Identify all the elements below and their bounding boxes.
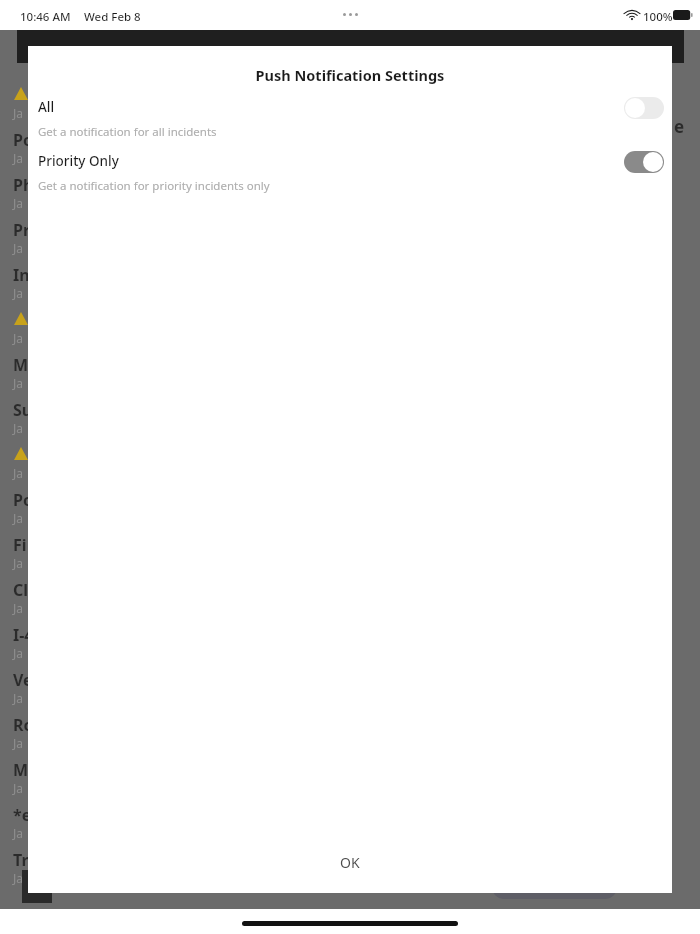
staticText: Ja [13, 510, 24, 526]
button[interactable]: OK [290, 845, 410, 879]
staticText: I-4 [13, 624, 34, 646]
staticText: Ro [13, 714, 34, 736]
staticText: e [674, 115, 685, 138]
staticText: Ve [13, 669, 33, 691]
staticText: M [13, 759, 29, 781]
staticText: Po [13, 129, 33, 151]
staticText: Pr [13, 219, 31, 241]
staticText: M [13, 354, 29, 376]
button[interactable]: Priority Only [28, 148, 672, 196]
staticText: Ja [13, 825, 24, 841]
staticText: Ja [13, 150, 24, 166]
staticText: *e [13, 804, 32, 826]
staticText: Ja [13, 735, 24, 751]
staticText: Get a notification for priority incident… [38, 178, 270, 194]
staticText: Ja [13, 780, 24, 796]
staticText: Ph [13, 174, 34, 196]
staticText: Ja [13, 600, 24, 616]
staticText: Fi [13, 534, 27, 556]
staticText: OK [340, 853, 360, 872]
staticText: Ja [13, 420, 24, 436]
staticText: Ja [13, 555, 24, 571]
staticText: Wed Feb 8 [84, 9, 141, 25]
staticText: Su [13, 399, 33, 421]
staticText: Ja [13, 105, 24, 121]
staticText: Po [13, 489, 33, 511]
staticText: 100% [643, 9, 673, 25]
staticText: Ja [13, 240, 24, 256]
staticText: Cl [13, 579, 29, 601]
staticText: Ja [13, 690, 24, 706]
staticText: Ja [13, 330, 24, 346]
staticText: Push Notification Settings [28, 65, 672, 85]
staticText: Ja [13, 465, 24, 481]
staticText: In [13, 264, 30, 286]
staticText: Ja [13, 285, 24, 301]
staticText: All [38, 98, 55, 116]
button[interactable]: All [28, 94, 672, 142]
staticText: Ja [13, 870, 24, 886]
button[interactable]: All off [624, 97, 664, 119]
staticText: 10:46 AM [20, 9, 71, 25]
staticText: Ja [13, 645, 24, 661]
staticText: Get a notification for all incidents [38, 124, 217, 140]
staticText: Ja [13, 375, 24, 391]
staticText: Priority Only [38, 152, 119, 170]
staticText: Tr [13, 849, 29, 871]
staticText: Ja [13, 195, 24, 211]
button[interactable]: Priority Only on [624, 151, 664, 173]
